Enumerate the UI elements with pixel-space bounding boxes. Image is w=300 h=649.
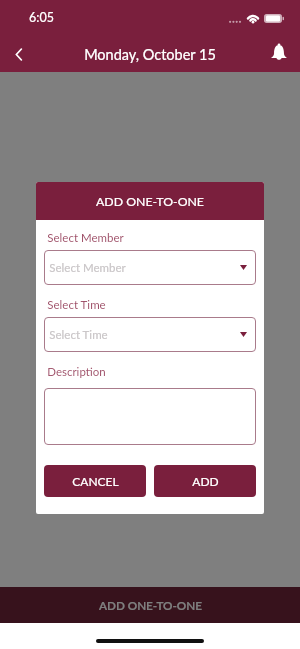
button[interactable]: Notifications: [258, 36, 300, 72]
staticText: 6:05: [29, 10, 54, 25]
button[interactable]: Back: [0, 36, 38, 72]
staticText: ADD: [192, 474, 219, 488]
button[interactable]: ADD ONE-TO-ONE: [0, 587, 300, 623]
staticText: Select Member: [49, 261, 126, 275]
button[interactable]: Select Member: [44, 250, 256, 285]
button[interactable]: CANCEL: [44, 465, 146, 497]
staticText: Description: [47, 365, 106, 379]
staticText: Select Time: [47, 298, 106, 312]
staticText: ADD ONE-TO-ONE: [96, 194, 204, 209]
staticText: ADD ONE-TO-ONE: [99, 598, 202, 612]
staticText: Select Member: [47, 231, 124, 245]
staticText: CANCEL: [72, 474, 119, 488]
button[interactable]: Select Time: [44, 317, 256, 352]
button[interactable]: [44, 388, 256, 445]
staticText: Monday, October 15: [84, 46, 216, 63]
staticText: Select Time: [49, 328, 108, 342]
button[interactable]: ADD: [154, 465, 256, 497]
